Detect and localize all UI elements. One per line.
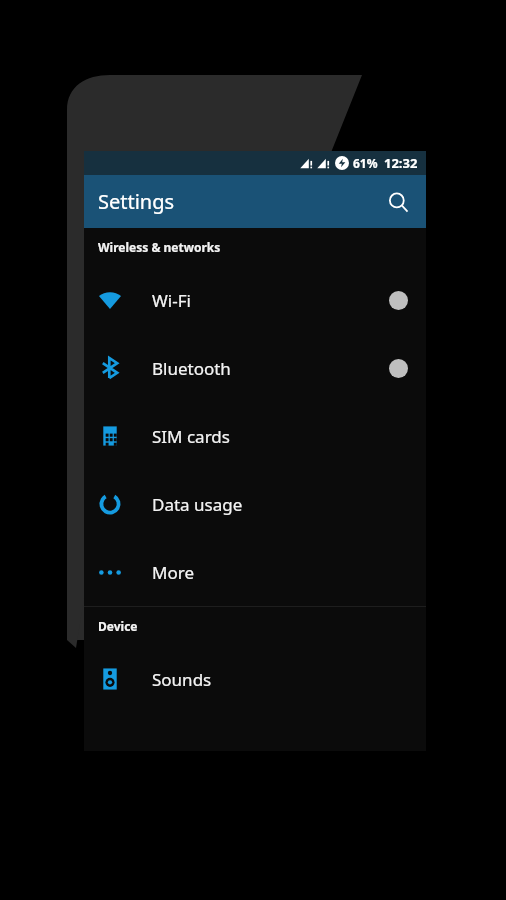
button[interactable]: Data usage (84, 470, 426, 538)
button[interactable]: Sounds (84, 645, 426, 713)
button[interactable]: More (84, 538, 426, 606)
staticText: Sounds (152, 668, 212, 691)
staticText: Wireless & networks (98, 239, 221, 255)
staticText: Data usage (152, 493, 243, 516)
staticText: Bluetooth (152, 357, 231, 380)
button[interactable]: Bluetooth (84, 334, 426, 402)
staticText: 61% (353, 155, 378, 171)
button[interactable]: Wi-Fi (84, 266, 426, 334)
staticText: 12:32 (384, 154, 418, 172)
staticText: SIM cards (152, 425, 230, 448)
button[interactable]: SIM cards (84, 402, 426, 470)
staticText: Device (98, 618, 138, 634)
staticText: Wi-Fi (152, 289, 191, 312)
staticText: More (152, 561, 194, 584)
staticText: Settings (98, 188, 175, 215)
button[interactable]: Search (378, 182, 418, 222)
